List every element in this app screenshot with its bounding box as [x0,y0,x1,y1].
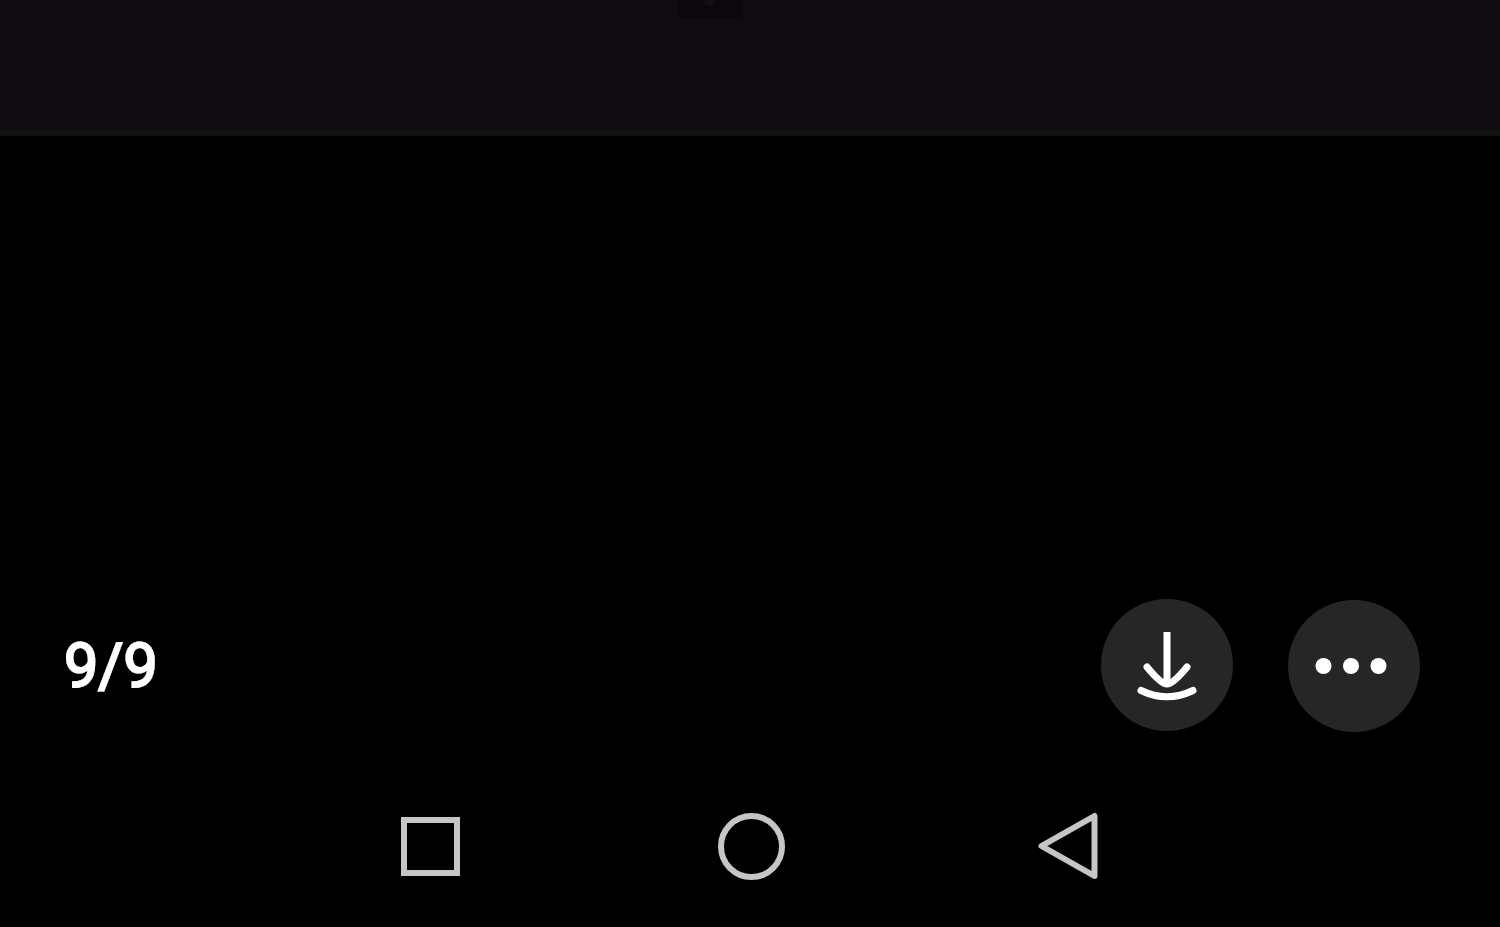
staticText: 9/9 [64,630,158,701]
button[interactable]: 9/9 [64,630,158,701]
button[interactable]: Download [1101,599,1233,731]
button[interactable]: More options [1288,600,1420,732]
button[interactable]: Recent apps [390,806,470,886]
button[interactable]: Home [711,806,791,886]
button[interactable]: Back [1028,806,1108,886]
